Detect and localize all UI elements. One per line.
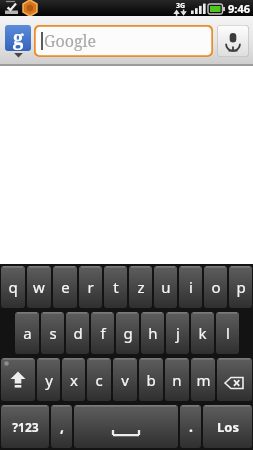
staticText: 9:46 xyxy=(228,1,250,16)
button[interactable]: l xyxy=(216,312,239,354)
button[interactable]: Search provider xyxy=(4,25,32,58)
staticText: v xyxy=(121,370,129,390)
staticText: a xyxy=(23,323,32,343)
button[interactable]: f xyxy=(91,312,114,354)
staticText: t xyxy=(113,277,119,297)
staticText: q xyxy=(8,277,18,297)
staticText: 3G xyxy=(176,1,186,11)
button[interactable]: m xyxy=(191,358,215,401)
button[interactable]: b xyxy=(139,358,163,401)
staticText: k xyxy=(198,323,207,343)
button[interactable]: Voice search xyxy=(217,25,249,57)
staticText: Los xyxy=(217,418,239,436)
staticText: i xyxy=(189,277,193,297)
staticText: c xyxy=(95,370,103,390)
button[interactable]: . xyxy=(180,405,201,448)
staticText: z xyxy=(137,277,145,297)
staticText: d xyxy=(73,323,83,343)
button[interactable]: ?123 xyxy=(1,405,49,448)
button[interactable]: x xyxy=(62,358,85,401)
staticText: Google xyxy=(44,30,97,52)
staticText: l xyxy=(226,323,230,343)
button[interactable]: a xyxy=(15,312,39,354)
button[interactable]: t xyxy=(104,266,127,308)
staticText: p xyxy=(236,277,246,297)
button[interactable]: g xyxy=(116,312,139,354)
staticText: n xyxy=(172,370,182,390)
button[interactable]: u xyxy=(154,266,177,308)
staticText: s xyxy=(49,323,57,343)
staticText: e xyxy=(61,277,70,297)
button[interactable]: , xyxy=(51,405,72,448)
button[interactable]: p xyxy=(229,266,252,308)
button[interactable]: k xyxy=(191,312,214,354)
button[interactable]: i xyxy=(179,266,202,308)
button[interactable]: h xyxy=(141,312,164,354)
button[interactable]: n xyxy=(165,358,189,401)
staticText: y xyxy=(45,370,53,390)
button[interactable]: Space xyxy=(74,405,178,448)
button[interactable]: Google xyxy=(34,25,213,57)
staticText: g xyxy=(13,25,24,51)
button[interactable]: Los xyxy=(203,405,252,448)
button[interactable]: Shift xyxy=(1,358,35,401)
staticText: m xyxy=(196,370,211,390)
button[interactable]: d xyxy=(66,312,89,354)
button[interactable]: y xyxy=(37,358,60,401)
staticText: ?123 xyxy=(12,419,39,435)
staticText: w xyxy=(33,277,45,297)
button[interactable]: e xyxy=(53,266,77,308)
staticText: u xyxy=(161,277,171,297)
button[interactable]: o xyxy=(204,266,227,308)
button[interactable]: j xyxy=(166,312,189,354)
staticText: r xyxy=(87,277,94,297)
button[interactable]: v xyxy=(113,358,137,401)
staticText: . xyxy=(189,417,193,436)
button[interactable]: c xyxy=(87,358,111,401)
staticText: o xyxy=(211,277,221,297)
staticText: h xyxy=(148,323,158,343)
staticText: x xyxy=(70,370,78,390)
staticText: , xyxy=(60,417,64,436)
staticText: f xyxy=(100,323,106,343)
button[interactable]: z xyxy=(129,266,152,308)
staticText: b xyxy=(146,370,156,390)
button[interactable]: q xyxy=(1,266,25,308)
button[interactable]: s xyxy=(41,312,64,354)
button[interactable]: w xyxy=(27,266,51,308)
staticText: j xyxy=(176,323,180,343)
button[interactable]: Delete xyxy=(217,358,252,401)
button[interactable]: r xyxy=(79,266,102,308)
staticText: g xyxy=(123,323,133,343)
